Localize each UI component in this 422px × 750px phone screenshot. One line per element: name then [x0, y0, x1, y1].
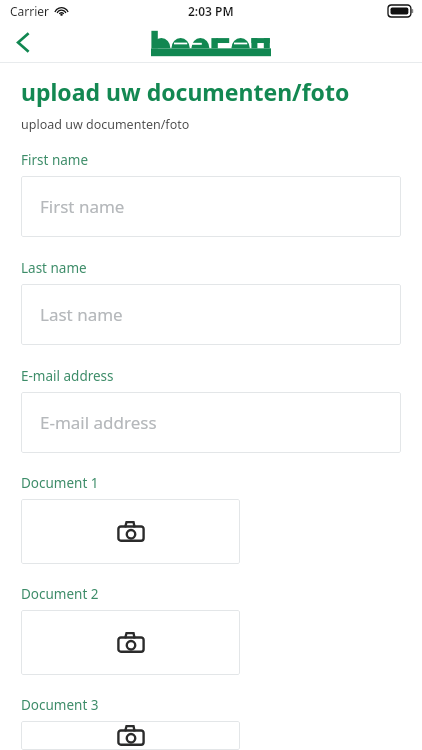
button[interactable]: First name	[21, 176, 401, 237]
staticText: First name	[21, 151, 89, 169]
staticText: 2:03 PM	[188, 3, 234, 19]
button[interactable]: Take photo for Document 3	[21, 721, 240, 750]
staticText: First name	[40, 195, 125, 218]
button[interactable]: Last name	[21, 284, 401, 345]
staticText: Last name	[21, 259, 87, 277]
staticText: E-mail address	[40, 411, 157, 434]
button[interactable]: Back	[0, 22, 46, 62]
staticText: upload uw documenten/foto	[21, 76, 350, 107]
button[interactable]: besren home	[151, 30, 271, 57]
staticText: E-mail address	[21, 367, 114, 385]
staticText: Last name	[40, 303, 123, 326]
button[interactable]: Take photo for Document 2	[21, 610, 240, 675]
staticText: Document 2	[21, 585, 99, 603]
staticText: Document 3	[21, 696, 99, 714]
button[interactable]: Take photo for Document 1	[21, 499, 240, 564]
button[interactable]: E-mail address	[21, 392, 401, 453]
staticText: Carrier	[10, 3, 50, 19]
staticText: Document 1	[21, 474, 99, 492]
staticText: upload uw documenten/foto	[21, 116, 190, 133]
